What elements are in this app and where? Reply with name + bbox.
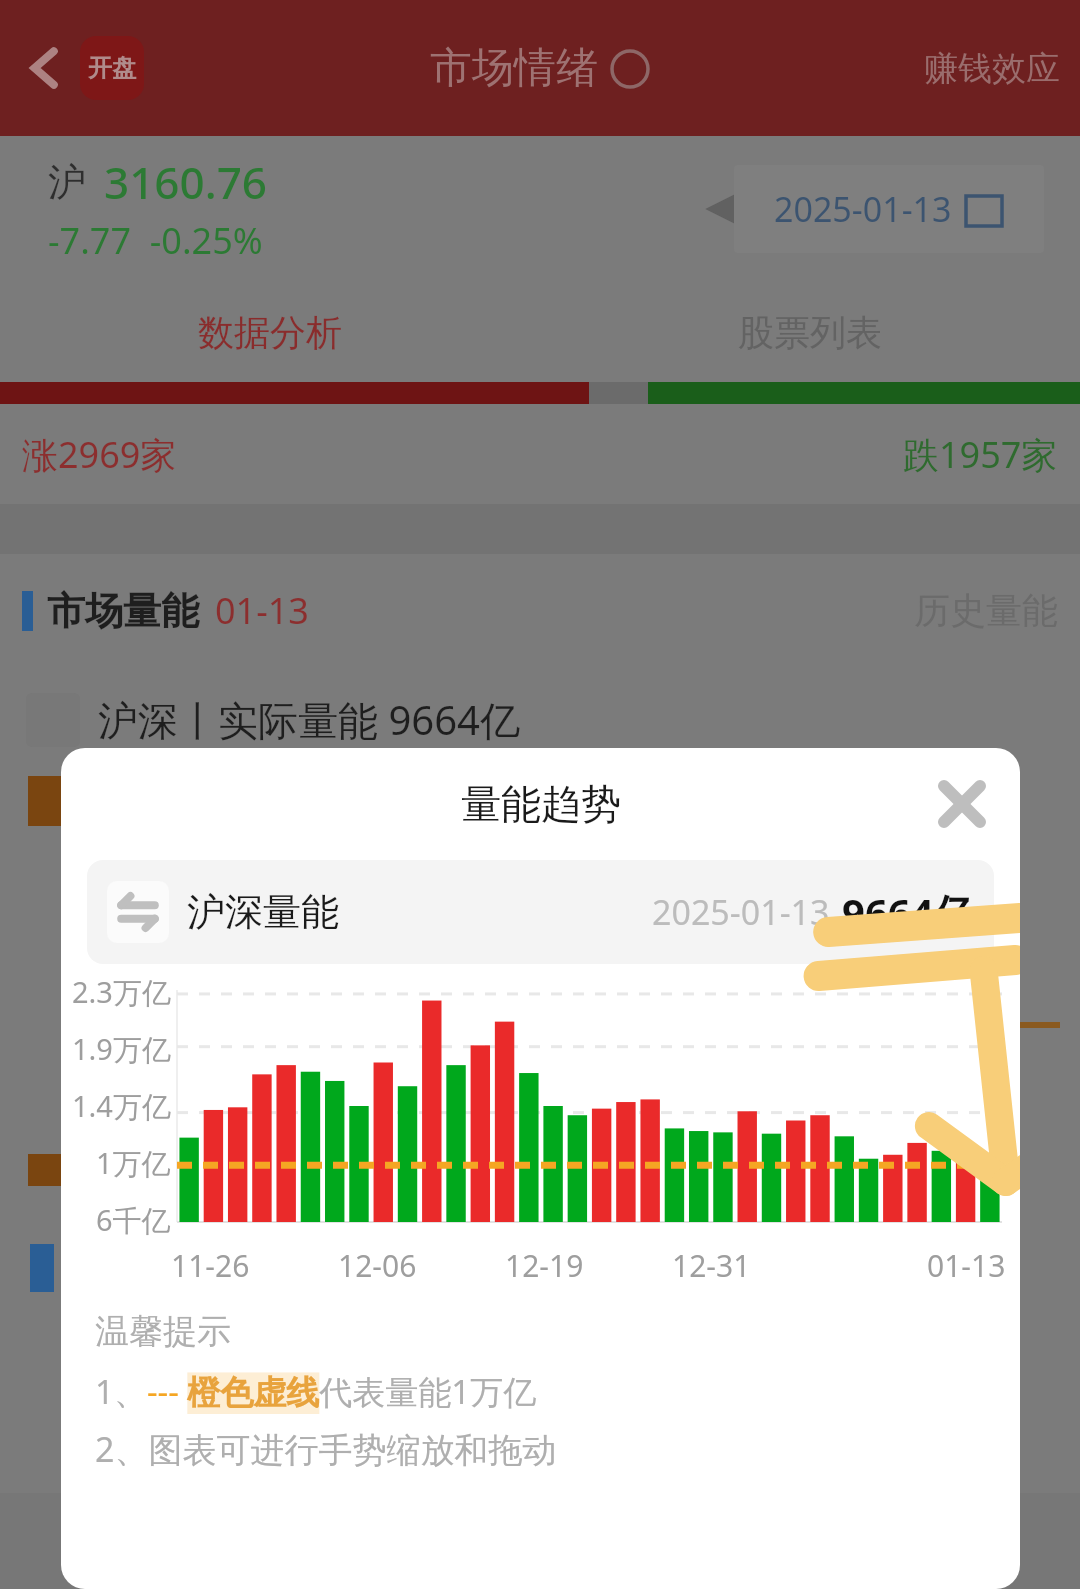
staticText: 2025-01-13 xyxy=(774,186,952,232)
staticText: 2025-01-13 xyxy=(652,889,830,935)
staticText: 3160.76 xyxy=(104,152,267,212)
staticText: 股票列表 xyxy=(738,310,882,355)
button[interactable]: 沪深量能 xyxy=(87,860,994,964)
staticText: 12-06 xyxy=(338,1245,417,1286)
staticText: 量能趋势 xyxy=(461,779,621,829)
button[interactable]: Close xyxy=(924,766,1000,842)
staticText: 市场情绪 xyxy=(430,42,598,95)
button[interactable]: 赚钱效应 xyxy=(924,47,1060,90)
button[interactable]: Back xyxy=(10,33,80,103)
staticText: -7.77 -0.25% xyxy=(48,216,263,265)
button[interactable]: 数据分析 xyxy=(0,282,540,382)
staticText: 1.4万亿 xyxy=(72,1086,171,1126)
staticText: 1.9万亿 xyxy=(72,1029,171,1069)
staticText: 12-19 xyxy=(505,1245,584,1286)
staticText: 6千亿 xyxy=(96,1200,171,1240)
staticText: 2、图表可进行手势缩放和拖动 xyxy=(95,1426,557,1472)
staticText: 2.3万亿 xyxy=(72,972,171,1012)
staticText: 12-31 xyxy=(672,1245,751,1286)
button[interactable]: 历史量能 xyxy=(914,588,1058,633)
staticText: 市场量能 xyxy=(47,587,199,635)
staticText: 01-13 xyxy=(215,586,309,635)
staticText: 开盘 xyxy=(88,53,136,83)
staticText: 涨2969家 xyxy=(22,430,177,479)
staticText: 沪深丨实际量能 9664亿 xyxy=(98,692,520,747)
staticText: 沪 xyxy=(48,158,86,206)
staticText: 01-13 xyxy=(927,1245,1006,1286)
staticText: 9664亿 xyxy=(842,885,974,940)
staticText: 1万亿 xyxy=(96,1143,171,1183)
staticText: 赚钱效应 xyxy=(924,47,1060,90)
button[interactable]: 股票列表 xyxy=(540,282,1080,382)
button[interactable]: 2025-01-13 xyxy=(734,165,1044,253)
staticText: 沪深量能 xyxy=(187,888,339,936)
staticText: 11-26 xyxy=(171,1245,250,1286)
staticText: 数据分析 xyxy=(198,310,342,355)
staticText: 1、--- 橙色虚线代表量能1万亿 xyxy=(95,1369,537,1414)
button[interactable]: App icon xyxy=(80,36,144,100)
staticText: 温馨提示 xyxy=(95,1310,231,1353)
staticText: 跌1957家 xyxy=(903,430,1058,479)
